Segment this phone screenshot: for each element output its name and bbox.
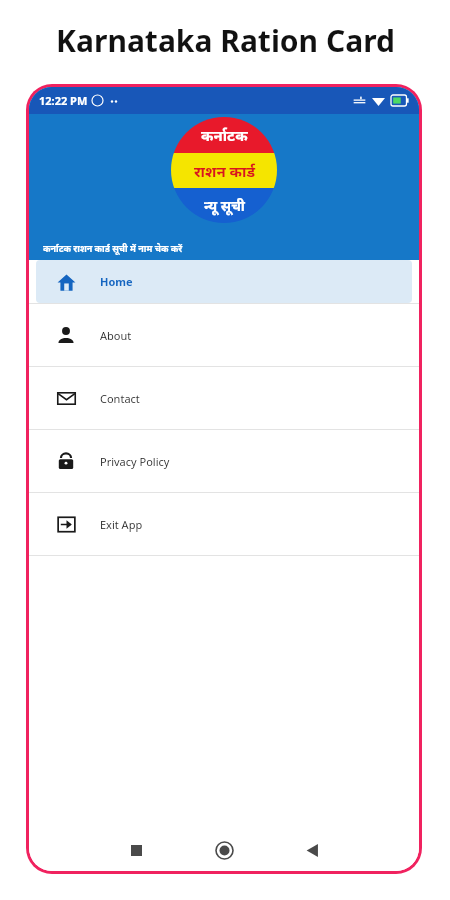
staticText: कर्नाटक: [201, 125, 248, 145]
button[interactable]: About: [36, 304, 412, 366]
staticText: Contact: [100, 391, 140, 406]
button[interactable]: Privacy Policy: [36, 430, 412, 492]
button[interactable]: Contact: [36, 367, 412, 429]
staticText: Karnataka Ration Card: [56, 20, 395, 61]
staticText: टन दबाकर इस एप: [289, 548, 363, 563]
button[interactable]: [37, 366, 411, 428]
staticText: About: [100, 328, 132, 343]
staticText: कर्नाटक राशन कार्ड सूची में नाम चेक करें: [43, 242, 183, 254]
button[interactable]: Home: [36, 260, 412, 303]
button[interactable]: Share App: [37, 433, 411, 526]
button[interactable]: Recents: [121, 835, 151, 865]
button[interactable]: [37, 299, 411, 361]
button[interactable]: टन दबाकर इस एप: [37, 531, 411, 599]
staticText: Home: [100, 274, 133, 289]
staticText: 12:22 PM: [39, 93, 88, 108]
staticText: न्यू सूची: [204, 196, 245, 215]
button[interactable]: Home: [209, 835, 239, 865]
staticText: Privacy Policy: [100, 454, 170, 469]
button[interactable]: [37, 165, 411, 227]
button[interactable]: Exit App: [36, 493, 412, 555]
button[interactable]: Back: [297, 835, 327, 865]
button[interactable]: [37, 232, 411, 294]
staticText: राशन कार्ड: [194, 161, 255, 181]
staticText: Exit App: [100, 517, 143, 532]
